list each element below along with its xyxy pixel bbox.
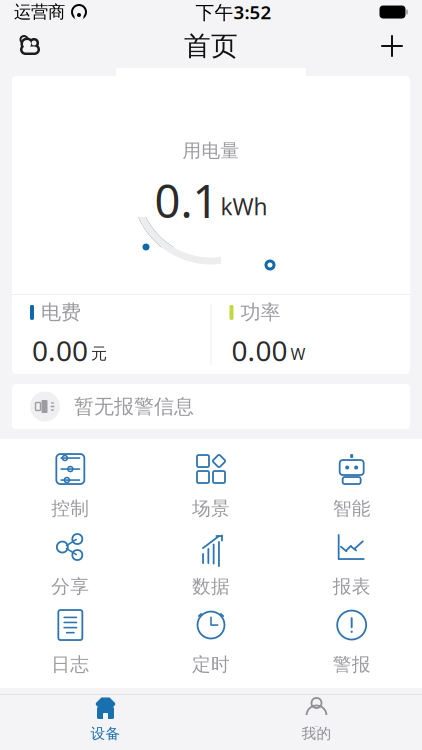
staticText: 日志: [51, 653, 89, 676]
button[interactable]: 日志: [0, 603, 141, 681]
staticText: 首页: [184, 30, 238, 62]
staticText: 用电量: [182, 139, 239, 162]
staticText: 定时: [192, 653, 230, 676]
button[interactable]: 智能: [281, 447, 422, 525]
button[interactable]: 定时: [141, 603, 281, 681]
button[interactable]: 控制: [0, 447, 141, 525]
staticText: 设备: [90, 724, 120, 742]
staticText: 暂无报警信息: [74, 394, 194, 419]
button[interactable]: 报表: [281, 525, 422, 603]
button[interactable]: 暂无报警信息: [0, 374, 422, 429]
staticText: 0.00: [32, 332, 88, 369]
staticText: 智能: [333, 497, 371, 520]
button[interactable]: 数据: [141, 525, 281, 603]
staticText: 报表: [333, 575, 371, 598]
staticText: 场景: [192, 497, 230, 520]
staticText: W: [290, 343, 305, 364]
button[interactable]: 场景: [141, 447, 281, 525]
staticText: 我的: [301, 724, 331, 742]
staticText: 电费: [41, 300, 81, 325]
staticText: 元: [91, 344, 107, 364]
staticText: 0.00: [231, 332, 287, 369]
button[interactable]: 分享: [0, 525, 141, 603]
button[interactable]: 警报: [281, 603, 422, 681]
staticText: 数据: [192, 575, 230, 598]
button[interactable]: 天气: [8, 24, 52, 68]
staticText: 下午3:52: [195, 0, 271, 24]
staticText: 功率: [240, 300, 280, 325]
staticText: 警报: [333, 653, 371, 676]
button[interactable]: 添加设备: [370, 24, 414, 68]
button[interactable]: 设备: [0, 695, 211, 744]
staticText: 控制: [51, 497, 89, 520]
staticText: 运营商: [14, 1, 65, 23]
staticText: kWh: [220, 191, 267, 221]
staticText: 分享: [51, 575, 89, 598]
staticText: 0.1: [154, 170, 218, 231]
button[interactable]: 我的: [211, 695, 422, 744]
